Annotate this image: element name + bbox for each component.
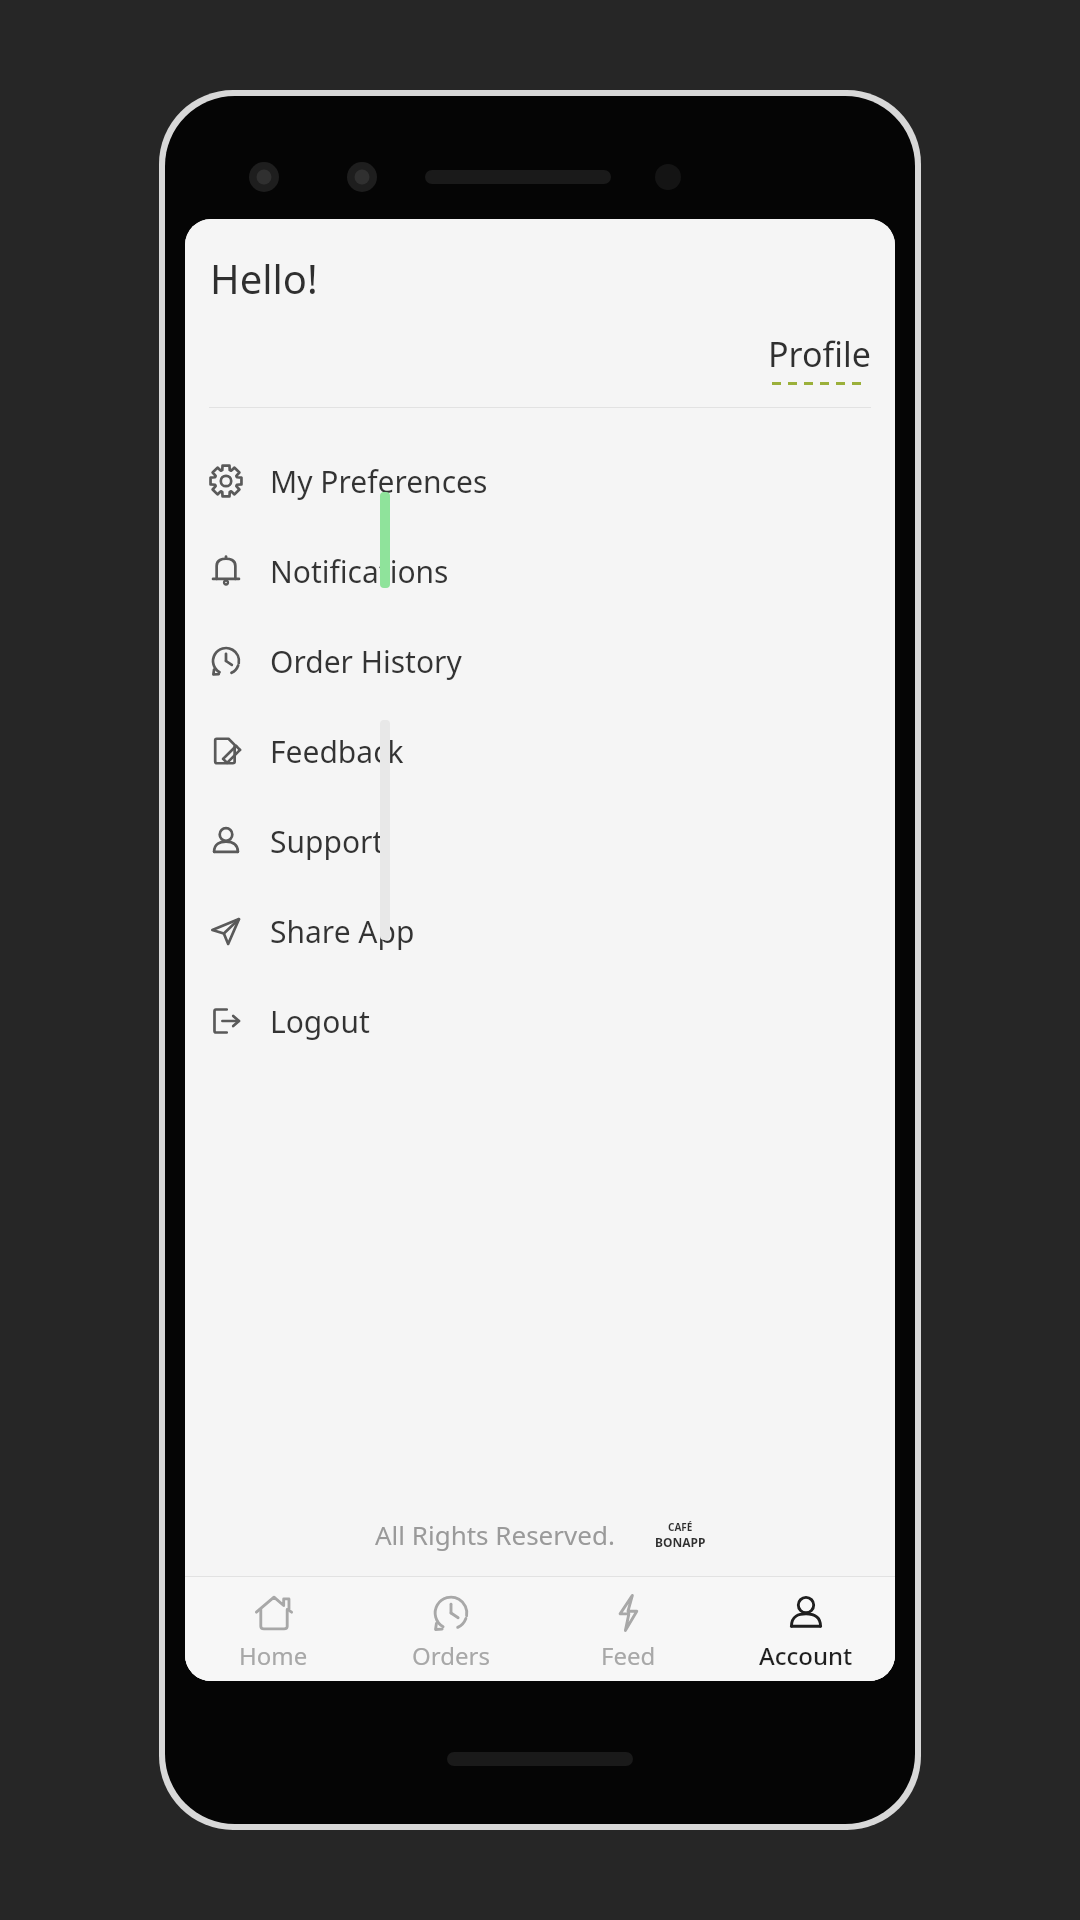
- button[interactable]: Order History: [185, 616, 895, 706]
- button[interactable]: Share App: [185, 886, 895, 976]
- button[interactable]: Feedback: [185, 706, 895, 796]
- button[interactable]: Home: [185, 1577, 362, 1681]
- staticText: My Preferences: [270, 461, 488, 502]
- button[interactable]: Notifications: [185, 526, 895, 616]
- staticText: Account: [759, 1639, 853, 1672]
- button[interactable]: Profile: [768, 331, 871, 385]
- button[interactable]: Feed: [539, 1577, 717, 1681]
- staticText: Share App: [270, 911, 415, 952]
- staticText: Profile: [768, 331, 871, 377]
- staticText: Logout: [270, 1001, 370, 1042]
- staticText: Notifications: [270, 551, 449, 592]
- button[interactable]: Orders: [362, 1577, 539, 1681]
- staticText: Support: [270, 821, 384, 862]
- staticText: Order History: [270, 641, 462, 682]
- staticText: All Rights Reserved.: [375, 1517, 615, 1552]
- staticText: BONAPP: [655, 1534, 706, 1550]
- staticText: CAFÉ: [668, 1520, 693, 1534]
- button[interactable]: Logout: [185, 976, 895, 1066]
- staticText: Feedback: [270, 731, 404, 772]
- staticText: Feed: [601, 1639, 656, 1672]
- button[interactable]: My Preferences: [185, 436, 895, 526]
- button[interactable]: Account: [717, 1577, 895, 1681]
- button[interactable]: Support: [185, 796, 895, 886]
- staticText: Home: [239, 1639, 308, 1672]
- staticText: Orders: [412, 1639, 490, 1672]
- staticText: Hello!: [210, 251, 318, 305]
